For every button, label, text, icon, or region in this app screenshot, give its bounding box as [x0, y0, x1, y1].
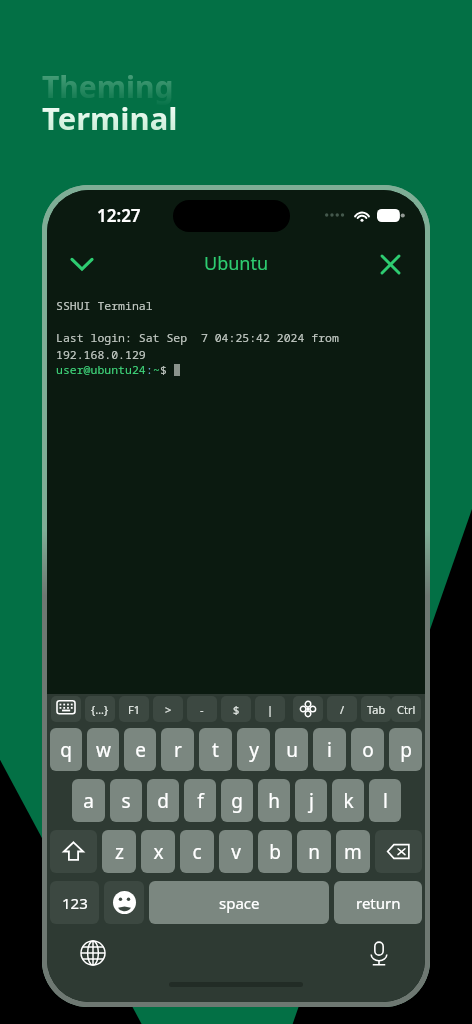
- button[interactable]: {…}: [85, 696, 115, 722]
- button[interactable]: l: [369, 779, 401, 822]
- button[interactable]: Change keyboard: [73, 933, 113, 973]
- button[interactable]: return: [334, 881, 422, 924]
- button[interactable]: m: [336, 830, 370, 873]
- staticText: 123: [62, 893, 88, 913]
- button[interactable]: w: [87, 728, 119, 771]
- button[interactable]: i: [313, 728, 346, 771]
- button[interactable]: Emoji: [104, 881, 144, 924]
- staticText: n: [308, 839, 320, 865]
- button[interactable]: >: [153, 696, 183, 722]
- button[interactable]: Voice input: [359, 933, 399, 973]
- button[interactable]: s: [110, 779, 142, 822]
- button[interactable]: Ctrl: [391, 696, 421, 722]
- staticText: o: [362, 737, 374, 763]
- staticText: a: [83, 788, 94, 814]
- button[interactable]: t: [199, 728, 232, 771]
- button[interactable]: -: [187, 696, 217, 722]
- button[interactable]: u: [275, 728, 308, 771]
- staticText: q: [60, 737, 72, 763]
- staticText: s: [121, 788, 131, 814]
- button[interactable]: Backspace: [375, 830, 422, 873]
- button[interactable]: space: [149, 881, 329, 924]
- button[interactable]: Ubuntu: [204, 251, 269, 276]
- button[interactable]: a: [72, 779, 105, 822]
- button[interactable]: y: [237, 728, 270, 771]
- staticText: j: [309, 788, 314, 814]
- staticText: y: [249, 737, 259, 763]
- staticText: x: [153, 839, 164, 865]
- staticText: user@ubuntu24: [56, 362, 146, 378]
- button[interactable]: e: [124, 728, 156, 771]
- button[interactable]: |: [255, 696, 285, 722]
- button[interactable]: p: [389, 728, 422, 771]
- staticText: g: [231, 788, 243, 814]
- button[interactable]: c: [180, 830, 214, 873]
- staticText: Last login: Sat Sep 7 04:25:42 2024 from…: [56, 330, 419, 362]
- staticText: p: [400, 737, 412, 763]
- button[interactable]: D-pad: [293, 696, 323, 722]
- staticText: u: [286, 737, 298, 763]
- staticText: r: [174, 737, 182, 763]
- staticText: m: [344, 839, 362, 865]
- staticText: z: [115, 839, 124, 865]
- staticText: l: [383, 788, 388, 814]
- button[interactable]: Minimize: [61, 243, 103, 285]
- staticText: c: [192, 839, 202, 865]
- staticText: Theming: [42, 66, 174, 107]
- button[interactable]: Close: [369, 243, 411, 285]
- button[interactable]: g: [221, 779, 253, 822]
- staticText: {…}: [91, 702, 109, 717]
- button[interactable]: $: [221, 696, 251, 722]
- staticText: :: [146, 362, 153, 378]
- button[interactable]: b: [258, 830, 292, 873]
- staticText: /: [340, 702, 345, 717]
- button[interactable]: h: [258, 779, 290, 822]
- staticText: space: [219, 893, 260, 913]
- button[interactable]: q: [50, 728, 82, 771]
- staticText: F1: [128, 702, 141, 717]
- button[interactable]: 123: [50, 881, 99, 924]
- button[interactable]: k: [332, 779, 364, 822]
- button[interactable]: r: [161, 728, 194, 771]
- staticText: 12:27: [97, 204, 141, 227]
- staticText: return: [356, 893, 401, 913]
- staticText: Terminal: [42, 97, 178, 139]
- staticText: ~: [153, 362, 160, 378]
- staticText: >: [165, 702, 172, 717]
- button[interactable]: F1: [119, 696, 149, 722]
- staticText: w: [96, 737, 111, 763]
- staticText: Ctrl: [397, 702, 416, 717]
- staticText: SSHUI Terminal: [56, 298, 153, 314]
- staticText: e: [135, 737, 146, 763]
- staticText: |: [267, 702, 274, 717]
- button[interactable]: Shift: [50, 830, 97, 873]
- staticText: $: [160, 362, 174, 378]
- button[interactable]: Keyboard: [51, 696, 81, 722]
- button[interactable]: o: [351, 728, 384, 771]
- button[interactable]: j: [295, 779, 327, 822]
- button[interactable]: /: [327, 696, 357, 722]
- staticText: $: [233, 702, 240, 717]
- staticText: -: [200, 702, 204, 717]
- staticText: b: [269, 839, 281, 865]
- staticText: v: [231, 839, 241, 865]
- staticText: h: [268, 788, 280, 814]
- staticText: d: [157, 788, 169, 814]
- button[interactable]: z: [102, 830, 136, 873]
- button[interactable]: v: [219, 830, 253, 873]
- staticText: i: [327, 737, 332, 763]
- staticText: f: [197, 788, 204, 814]
- staticText: k: [343, 788, 354, 814]
- button[interactable]: Tab: [361, 696, 391, 722]
- button[interactable]: x: [141, 830, 175, 873]
- staticText: t: [212, 737, 219, 763]
- button[interactable]: n: [297, 830, 331, 873]
- staticText: Tab: [367, 702, 386, 717]
- button[interactable]: d: [147, 779, 179, 822]
- button[interactable]: f: [184, 779, 216, 822]
